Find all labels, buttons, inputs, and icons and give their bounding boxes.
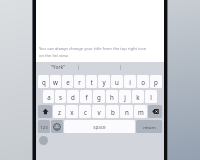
button[interactable]: a bbox=[43, 90, 54, 103]
button[interactable]: Emoji bbox=[39, 136, 48, 145]
button[interactable]: f bbox=[80, 90, 92, 103]
staticText: o bbox=[141, 78, 145, 86]
button[interactable]: h bbox=[106, 90, 118, 103]
button[interactable]: o bbox=[137, 75, 149, 88]
staticText: g bbox=[97, 93, 101, 101]
staticText: m bbox=[138, 108, 144, 116]
button[interactable]: l bbox=[145, 90, 157, 103]
button[interactable]: p bbox=[150, 75, 162, 88]
staticText: u bbox=[115, 78, 119, 86]
staticText: f bbox=[85, 93, 88, 101]
button[interactable]: d bbox=[67, 90, 79, 103]
staticText: i bbox=[129, 78, 131, 86]
button[interactable]: Backspace bbox=[148, 105, 162, 118]
button[interactable]: q bbox=[38, 75, 49, 88]
button[interactable]: u bbox=[111, 75, 123, 88]
button[interactable]: r bbox=[74, 75, 85, 88]
button[interactable]: m bbox=[134, 105, 147, 118]
staticText: “York” bbox=[51, 64, 65, 71]
staticText: 123 bbox=[40, 124, 48, 130]
button[interactable]: w bbox=[50, 75, 61, 88]
button[interactable]: Shift bbox=[38, 105, 52, 118]
staticText: b bbox=[111, 108, 115, 116]
staticText: z bbox=[58, 108, 61, 116]
button[interactable]: g bbox=[93, 90, 105, 103]
button[interactable]: “York” bbox=[38, 62, 78, 73]
button[interactable]: n bbox=[120, 105, 133, 118]
staticText: j bbox=[124, 93, 126, 101]
button[interactable]: k bbox=[132, 90, 144, 103]
button[interactable]: s bbox=[55, 90, 66, 103]
staticText: space bbox=[93, 124, 106, 130]
button[interactable]: i bbox=[124, 75, 136, 88]
button[interactable]: e bbox=[62, 75, 73, 88]
button[interactable]: z bbox=[53, 105, 65, 118]
button[interactable]: space bbox=[64, 120, 135, 133]
button[interactable]: y bbox=[98, 75, 110, 88]
staticText: p bbox=[154, 78, 158, 86]
staticText: k bbox=[136, 93, 140, 101]
staticText: s bbox=[59, 93, 62, 101]
button[interactable]: v bbox=[92, 105, 105, 118]
staticText: l bbox=[150, 93, 152, 101]
button[interactable]: 123 bbox=[38, 120, 50, 133]
staticText: v bbox=[97, 108, 101, 116]
staticText: x bbox=[70, 108, 74, 116]
button[interactable]: return bbox=[136, 120, 162, 133]
staticText: h bbox=[110, 93, 114, 101]
staticText: r bbox=[78, 78, 81, 86]
staticText: c bbox=[84, 108, 87, 116]
staticText: w bbox=[53, 78, 58, 86]
staticText: y bbox=[102, 78, 106, 86]
staticText: n bbox=[125, 108, 129, 116]
button[interactable]: c bbox=[79, 105, 91, 118]
button[interactable]: t bbox=[86, 75, 97, 88]
button[interactable]: j bbox=[119, 90, 131, 103]
staticText: You can always change your title from th… bbox=[39, 46, 147, 58]
button[interactable]: Emoji bbox=[51, 120, 63, 133]
staticText: d bbox=[71, 93, 75, 101]
staticText: return bbox=[143, 124, 156, 130]
button[interactable]: b bbox=[106, 105, 119, 118]
staticText: t bbox=[90, 78, 93, 86]
button[interactable]: x bbox=[66, 105, 78, 118]
staticText: q bbox=[42, 78, 46, 86]
staticText: a bbox=[47, 93, 51, 101]
staticText: e bbox=[66, 78, 70, 86]
